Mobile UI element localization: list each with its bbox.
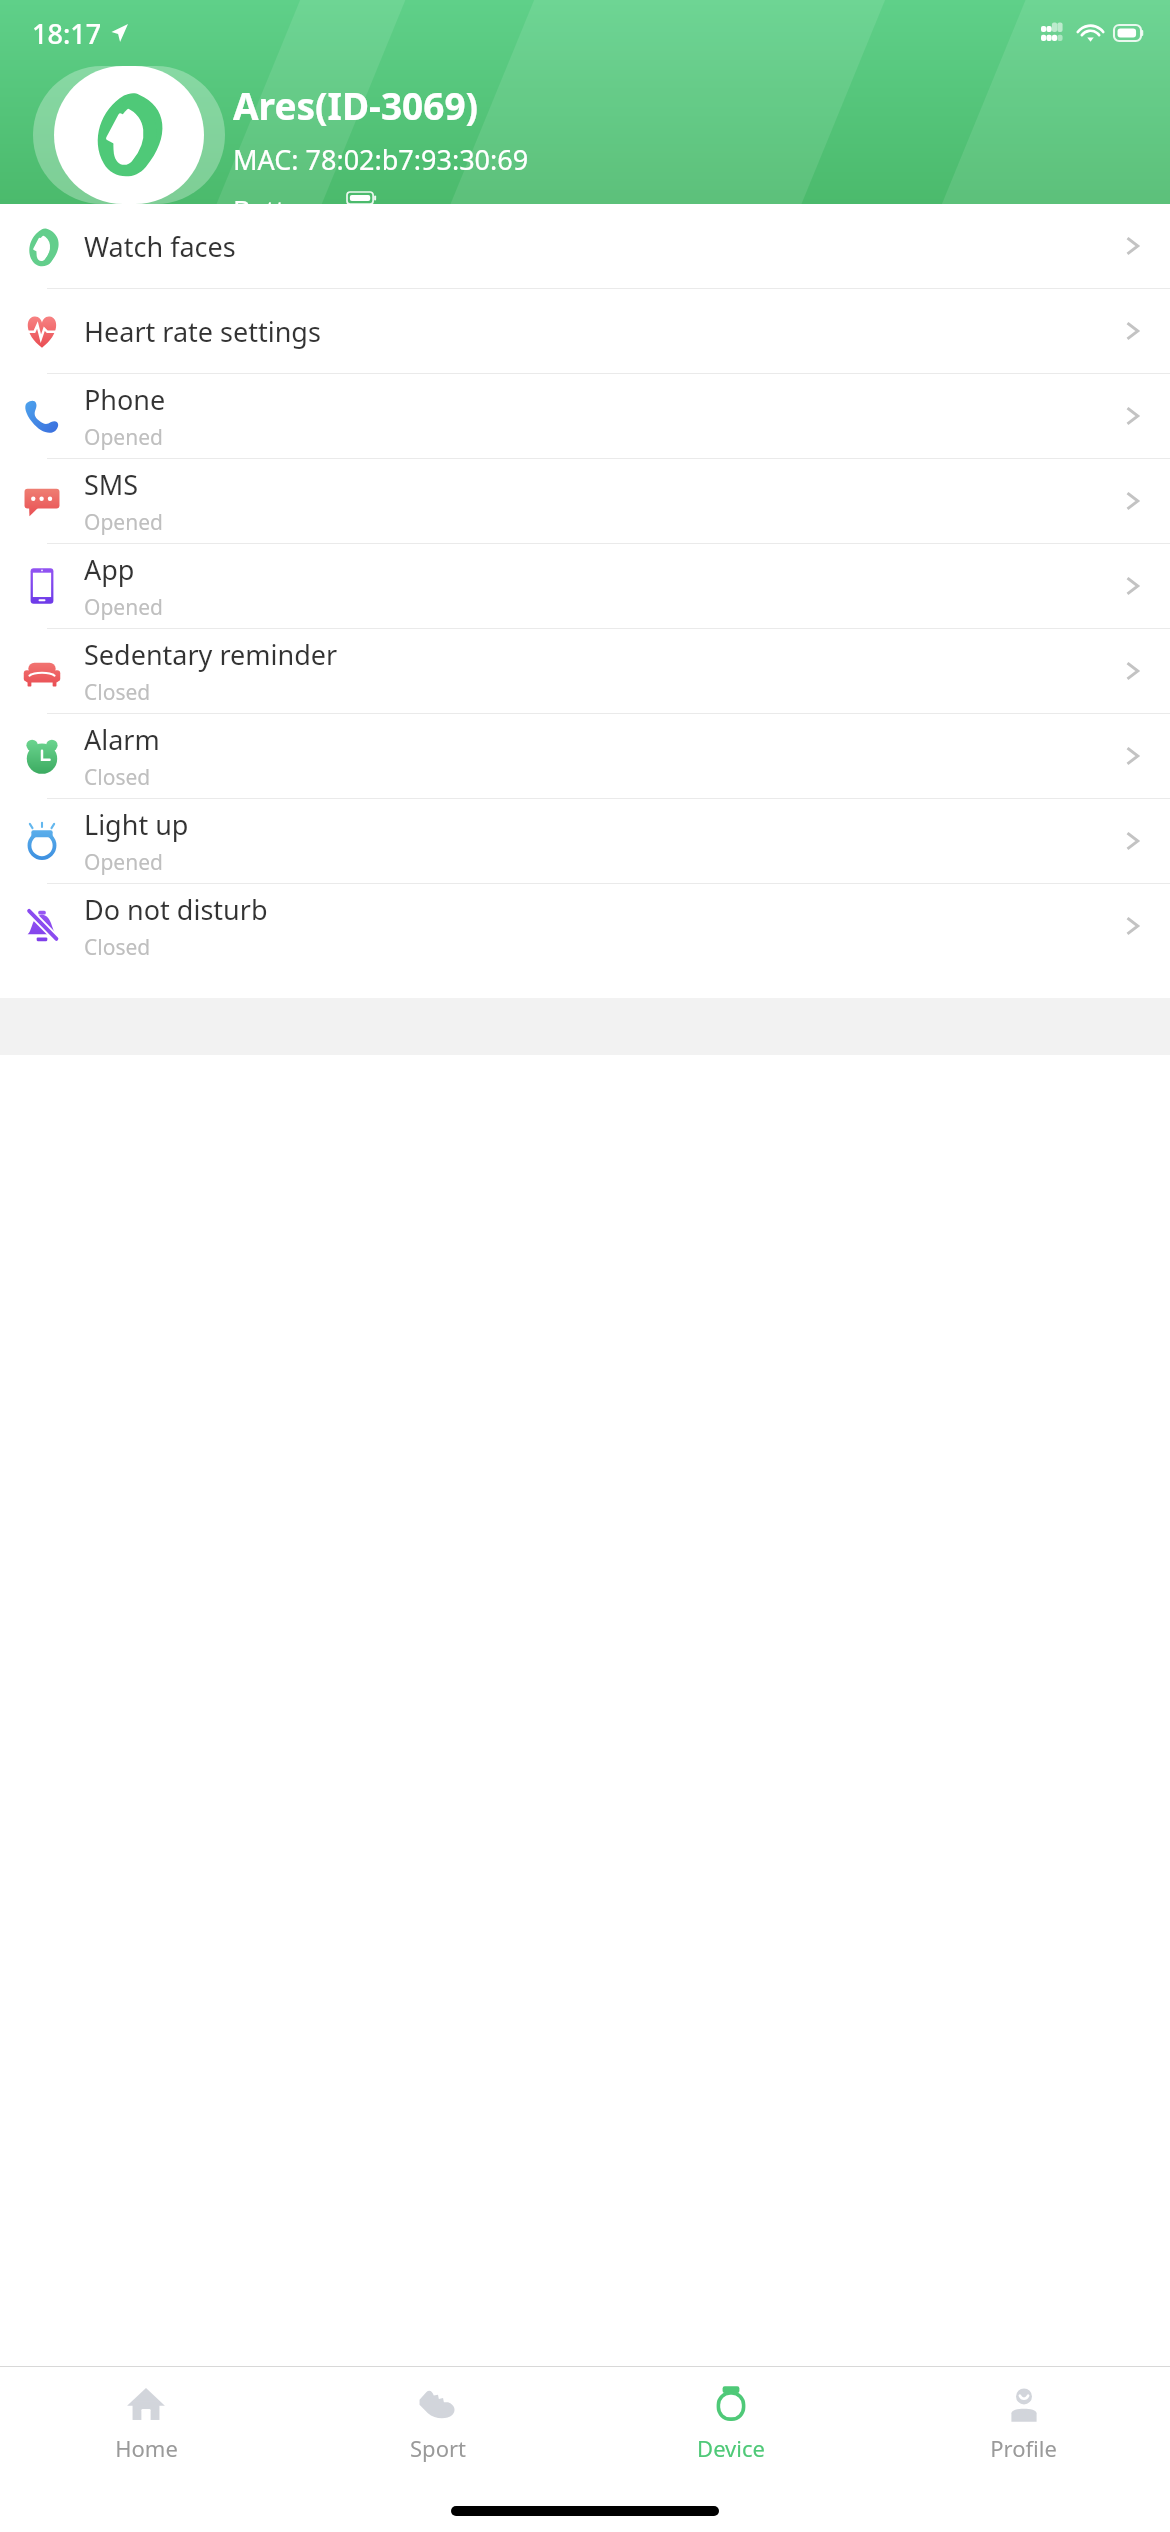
button[interactable]: Light up [0,799,1170,883]
button[interactable]: Heart rate settings [0,289,1170,373]
staticText: Home [115,2433,178,2463]
staticText: Sport [410,2433,466,2463]
staticText: Device [697,2433,765,2463]
staticText: Alarm [84,721,160,758]
staticText: Profile [990,2433,1057,2463]
staticText: Do not disturb [84,891,268,928]
staticText: Sedentary reminder [84,636,338,673]
staticText: Opened [84,848,163,877]
button[interactable]: Watch faces [0,204,1170,288]
staticText: 18:17 [32,15,102,52]
staticText: App [84,551,135,588]
button[interactable]: Sedentary reminder [0,629,1170,713]
staticText: Opened [84,593,163,622]
button[interactable]: Profile [877,2367,1170,2482]
staticText: Opened [84,423,163,452]
staticText: Watch faces [84,228,236,265]
button[interactable]: Phone [0,374,1170,458]
button[interactable]: Sport [292,2367,584,2482]
staticText: Ares(ID-3069) [233,80,479,130]
staticText: Phone [84,381,166,418]
button[interactable]: Device [584,2367,877,2482]
button[interactable]: SMS [0,459,1170,543]
staticText: Battery: [233,192,333,204]
staticText: Heart rate settings [84,313,321,350]
staticText: MAC: 78:02:b7:93:30:69 [233,141,529,178]
staticText: Closed [84,678,151,707]
staticText: Closed [84,763,151,792]
staticText: Light up [84,806,189,843]
staticText: Opened [84,508,163,537]
staticText: SMS [84,466,139,503]
button[interactable]: Alarm [0,714,1170,798]
button[interactable]: App [0,544,1170,628]
staticText: Closed [84,933,151,962]
button[interactable]: Home [0,2367,292,2482]
button[interactable]: Do not disturb [0,884,1170,968]
